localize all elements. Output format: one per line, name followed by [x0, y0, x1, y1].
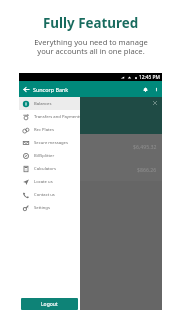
button[interactable]: BillSplitter [19, 149, 80, 162]
staticText: Calculators [34, 166, 56, 172]
staticText: BillSplitter [34, 153, 55, 159]
staticText: Everyday Account [23, 140, 67, 147]
staticText: Locate us [34, 179, 53, 185]
button[interactable]: Rec Plates [19, 123, 80, 136]
staticText: 12:45 PM [139, 74, 160, 81]
button[interactable]: Contact us [19, 188, 80, 201]
staticText: Transfers and Payments [34, 114, 80, 120]
staticText: Contact us [34, 192, 55, 198]
staticText: Settings [34, 205, 50, 211]
button[interactable]: Settings [19, 201, 80, 214]
button[interactable]: More options [153, 86, 160, 93]
staticText: Your accounts [23, 125, 58, 132]
button[interactable]: Logout [21, 298, 78, 310]
button[interactable]: Balances [19, 97, 80, 110]
staticText: Secure messages [34, 140, 68, 146]
staticText: Logout [41, 301, 58, 308]
staticText: Rec Plates [34, 127, 54, 133]
staticText: Balances [34, 101, 52, 107]
staticText: $866.26 [137, 166, 157, 173]
button[interactable]: Secure messages [19, 136, 80, 149]
staticText: $6,495.32 [133, 143, 157, 150]
staticText: Fully Featured [43, 14, 139, 32]
button[interactable]: Locate us [19, 175, 80, 188]
button[interactable]: Calculators [19, 162, 80, 175]
staticText: Suncorp Bank [33, 86, 69, 93]
button[interactable]: Transfers and Payments [19, 110, 80, 123]
button[interactable]: Close [151, 99, 159, 107]
button[interactable]: Back [22, 85, 31, 94]
staticText: Everything you need to manage your accou… [34, 37, 148, 57]
button[interactable]: Notifications [141, 85, 150, 94]
staticText: Savings Account [23, 163, 63, 170]
